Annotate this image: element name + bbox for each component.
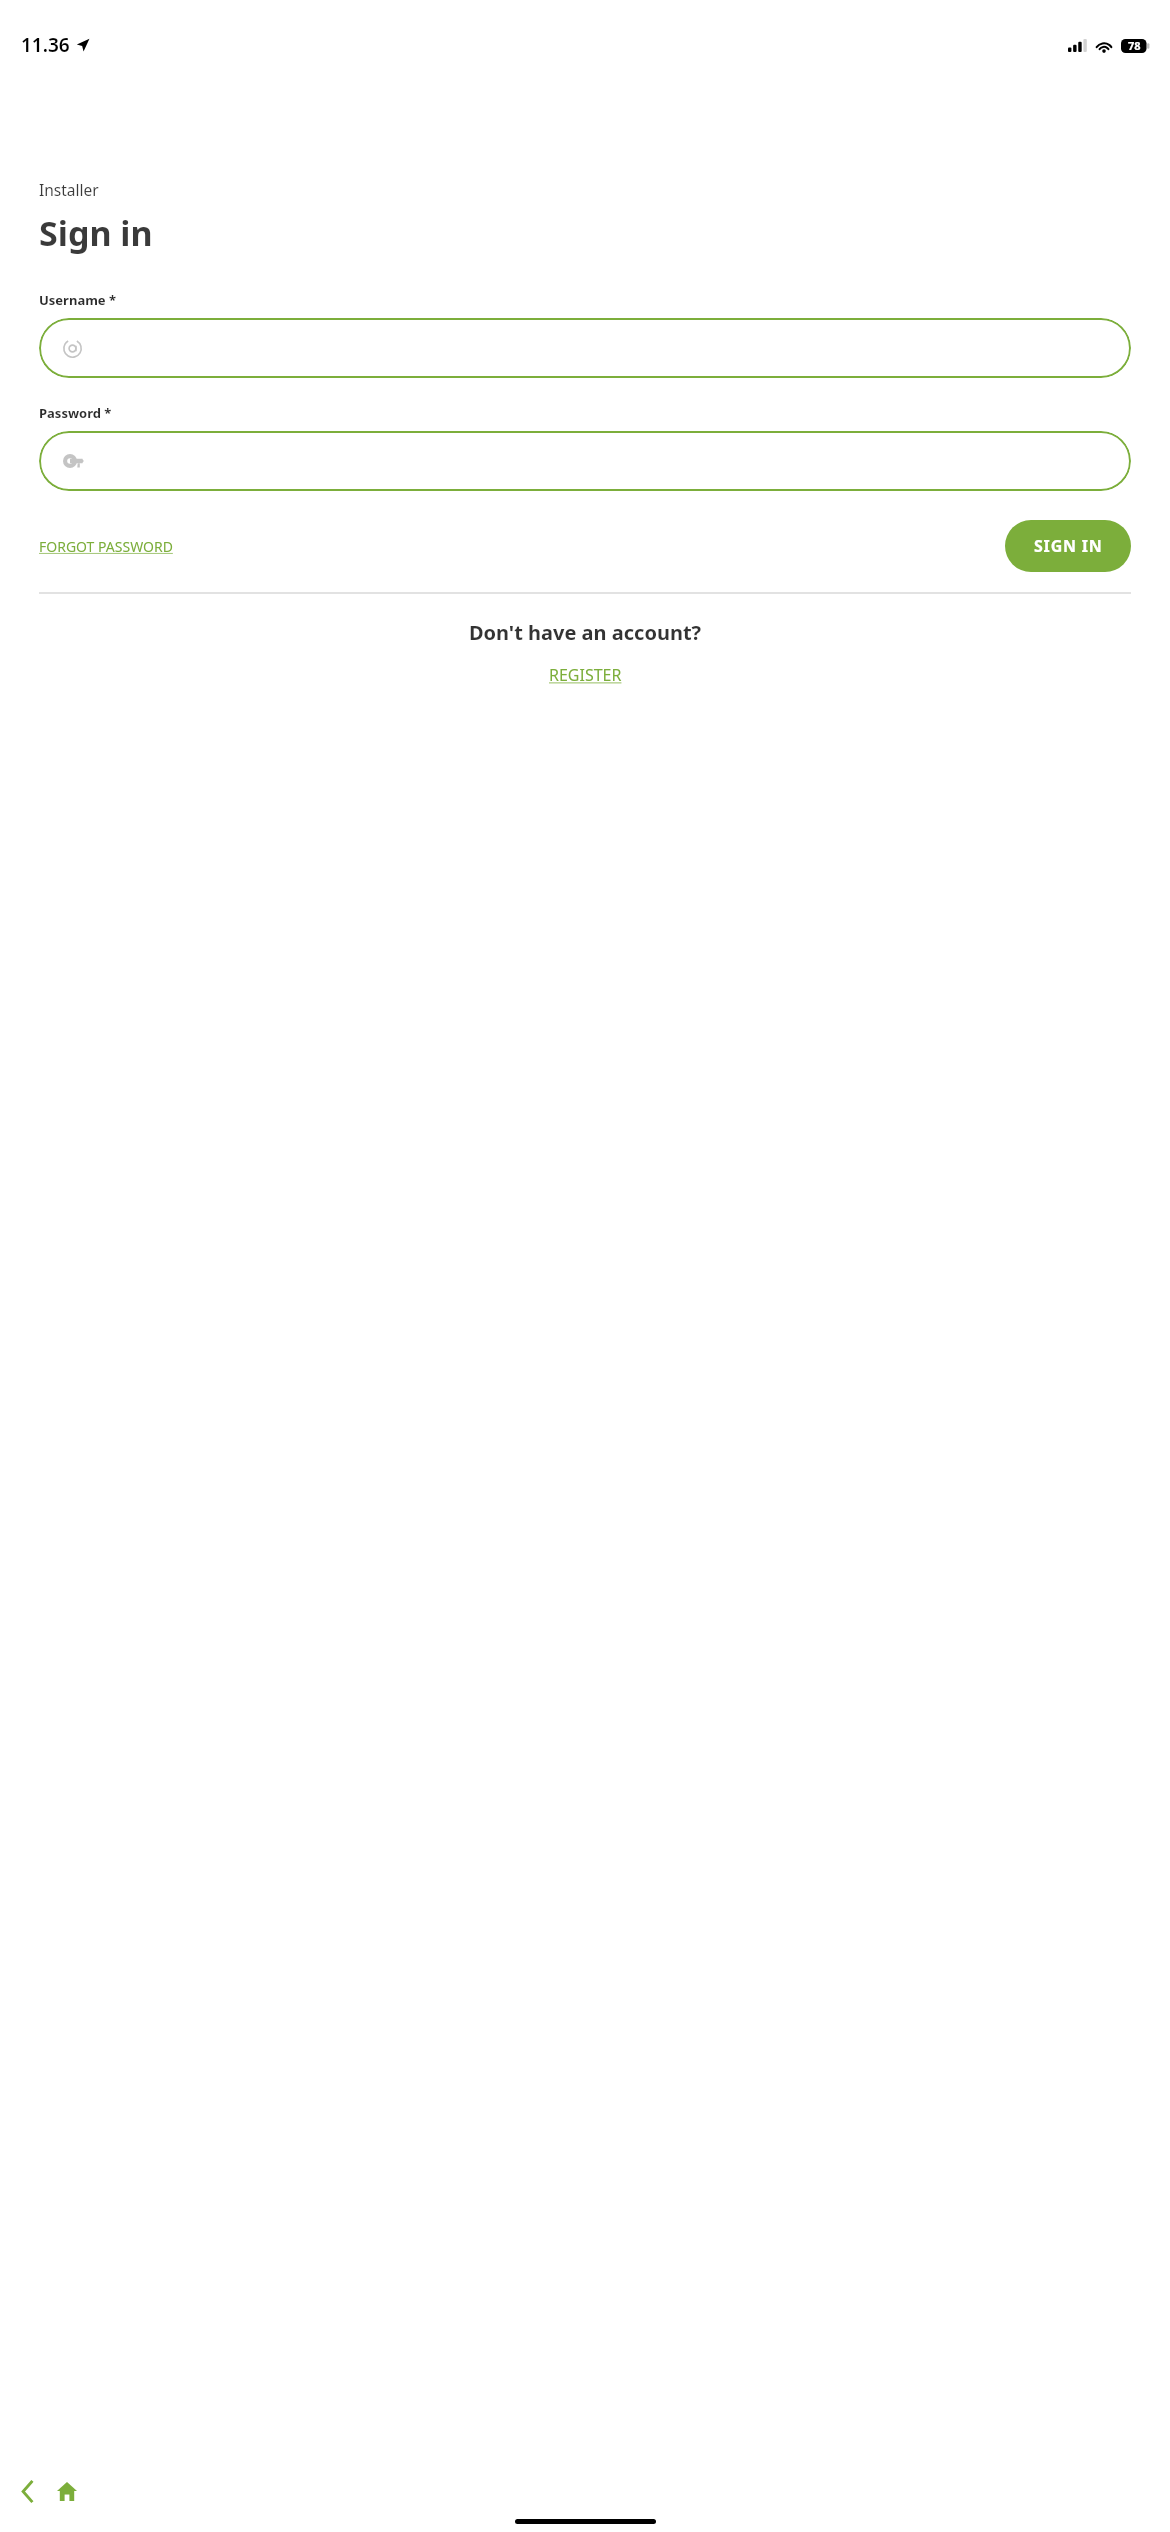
button[interactable]: SIGN IN	[1005, 520, 1131, 572]
button[interactable]: FORGOT PASSWORD	[39, 531, 173, 562]
staticText: FORGOT PASSWORD	[39, 537, 173, 556]
button[interactable]: Back	[10, 2474, 44, 2508]
staticText: Username *	[39, 291, 117, 309]
staticText: Sign in	[39, 210, 153, 256]
button[interactable]: Username field	[39, 318, 1131, 378]
button[interactable]: Home	[50, 2474, 84, 2508]
staticText: SIGN IN	[1034, 535, 1103, 557]
staticText: Password *	[39, 404, 112, 422]
button[interactable]: REGISTER	[541, 660, 630, 690]
staticText: 11.36	[21, 32, 70, 58]
button[interactable]: Password field	[39, 431, 1131, 491]
staticText: 78	[1128, 38, 1141, 53]
staticText: Installer	[39, 179, 99, 200]
staticText: REGISTER	[549, 664, 622, 686]
staticText: Don't have an account?	[39, 619, 1131, 646]
